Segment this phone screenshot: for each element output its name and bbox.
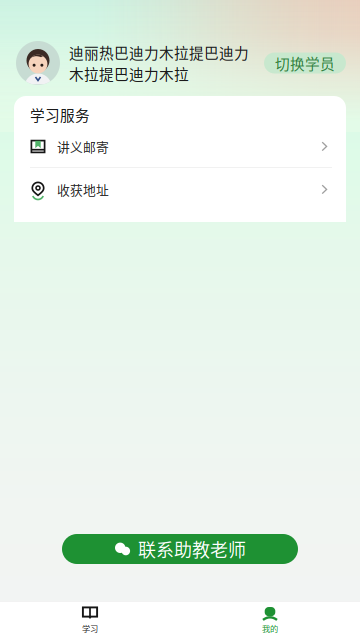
staticText: 切换学员 xyxy=(275,52,335,74)
staticText: 联系助教老师 xyxy=(138,536,246,562)
button[interactable]: 收获地址 xyxy=(14,168,346,211)
staticText: 迪丽热巴迪力木拉提巴迪力木拉提巴迪力木拉 xyxy=(69,42,249,84)
button[interactable]: 联系助教老师 xyxy=(62,534,298,564)
staticText: 收获地址 xyxy=(57,180,109,199)
button[interactable]: 讲义邮寄 xyxy=(14,126,346,167)
staticText: 我的 xyxy=(262,622,278,634)
button[interactable]: 我的 xyxy=(180,601,360,640)
staticText: 学习 xyxy=(82,622,98,634)
button[interactable]: 学习 xyxy=(0,601,180,640)
button[interactable]: 切换学员 xyxy=(264,52,346,73)
staticText: 学习服务 xyxy=(30,104,90,125)
staticText: 讲义邮寄 xyxy=(57,137,109,156)
